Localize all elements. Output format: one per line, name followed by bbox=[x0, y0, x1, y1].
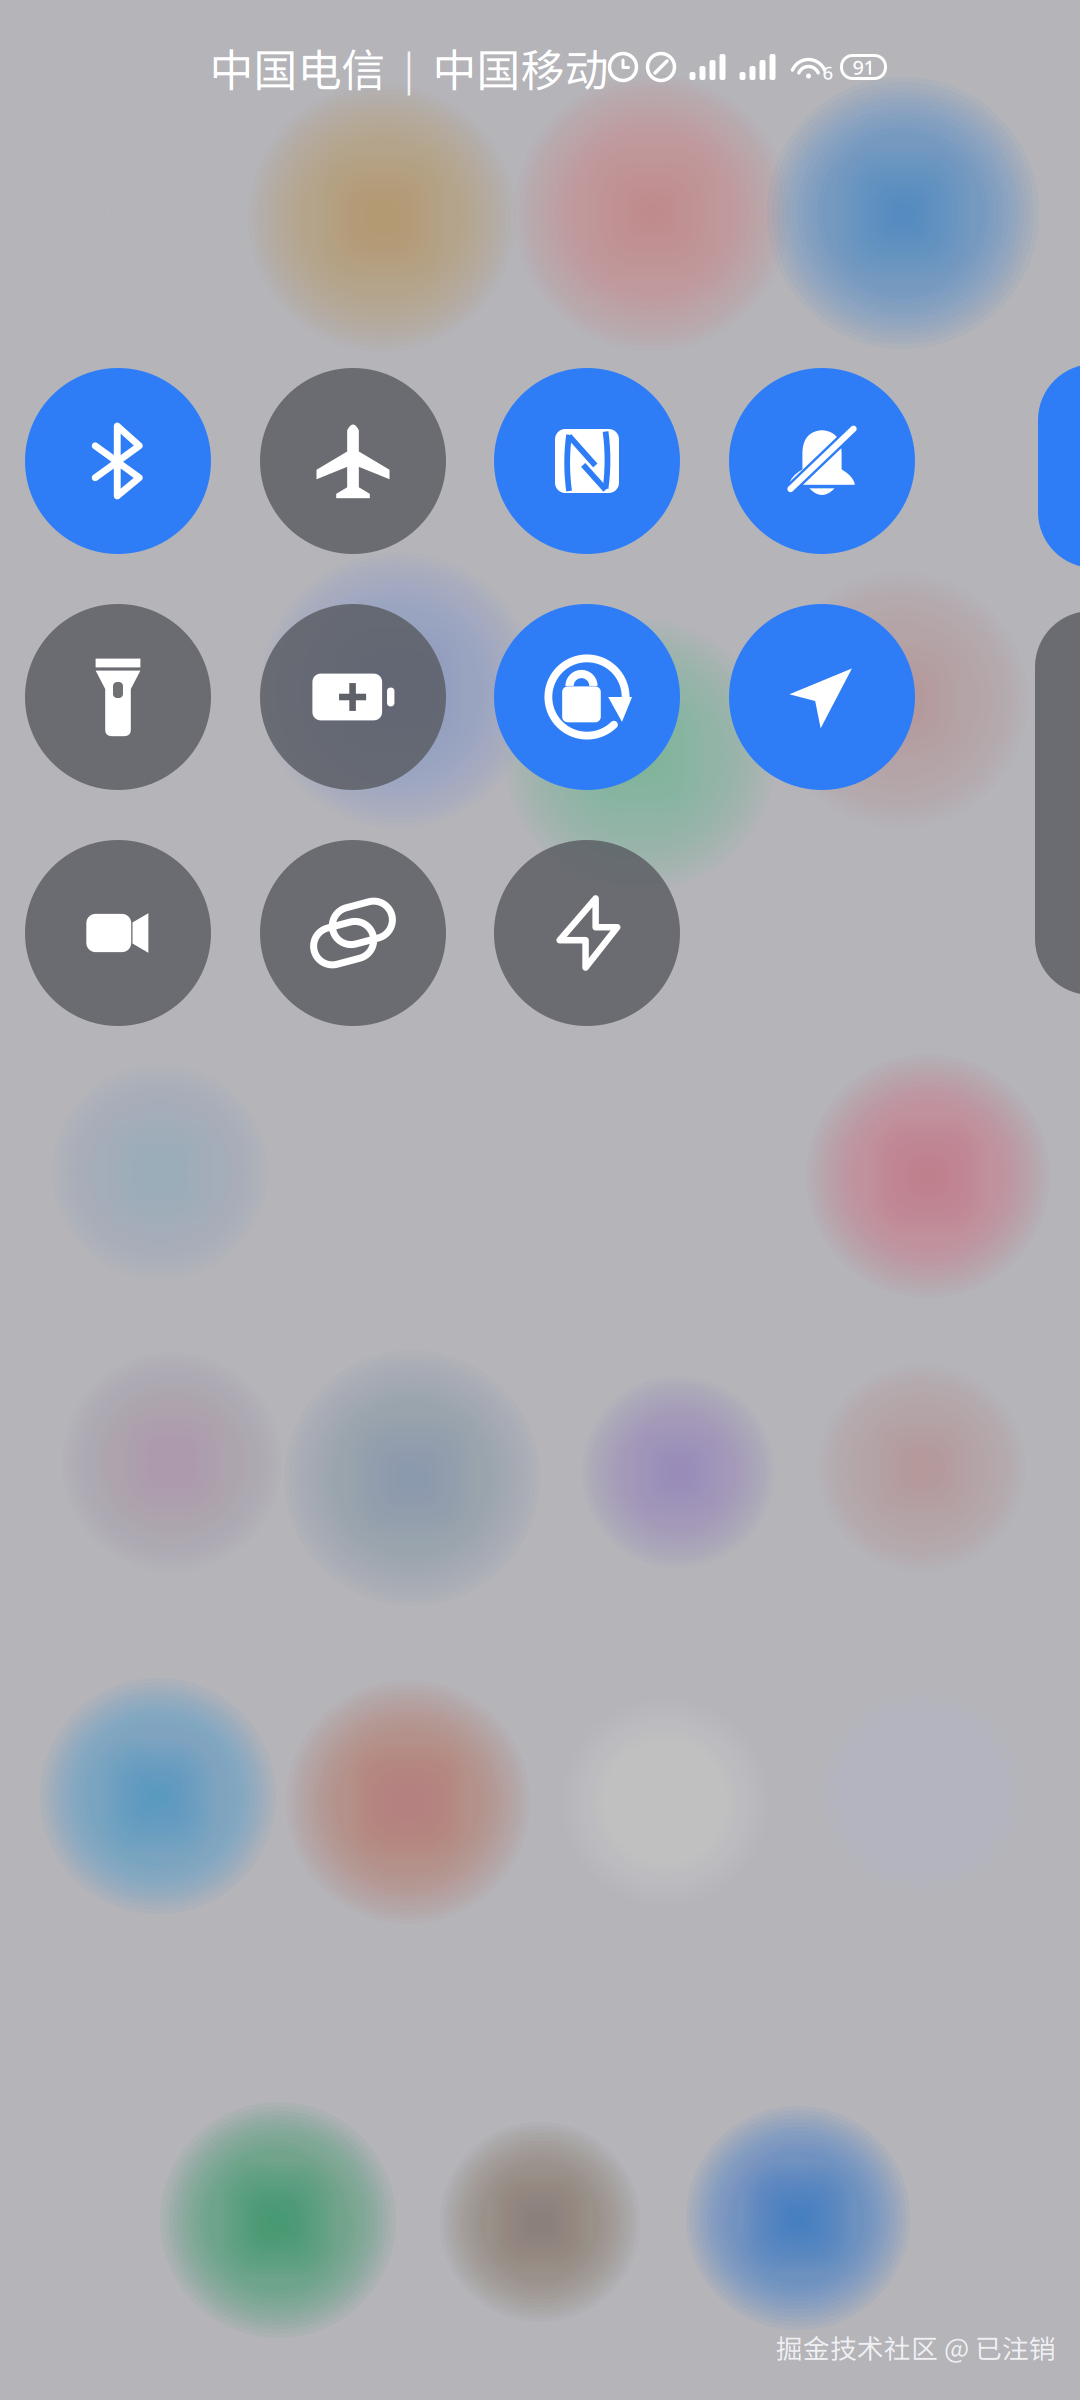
button[interactable]: Rotation Lock bbox=[494, 604, 680, 790]
staticText: 中国移动 bbox=[432, 35, 608, 99]
staticText: 掘金技术社区 @ 已注销 bbox=[776, 2328, 1056, 2366]
staticText: 91 bbox=[852, 54, 874, 80]
button[interactable]: Screen Recorder bbox=[25, 840, 211, 1026]
button[interactable]: NFC bbox=[494, 368, 680, 554]
button[interactable]: Quick Charge bbox=[494, 840, 680, 1026]
button[interactable]: Link Sharing bbox=[260, 840, 446, 1026]
button[interactable]: Bluetooth bbox=[25, 368, 211, 554]
staticText: | bbox=[385, 38, 432, 96]
button[interactable]: Flashlight bbox=[25, 604, 211, 790]
button[interactable]: Location bbox=[729, 604, 915, 790]
button[interactable]: Silent Mode bbox=[729, 368, 915, 554]
button[interactable]: Airplane Mode bbox=[260, 368, 446, 554]
staticText: 中国电信 bbox=[209, 35, 385, 99]
button[interactable]: Battery Saver bbox=[260, 604, 446, 790]
staticText: 6 bbox=[822, 60, 833, 85]
